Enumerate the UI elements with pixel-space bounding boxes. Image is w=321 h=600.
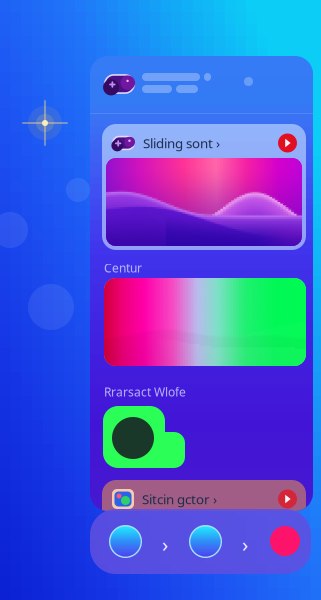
button[interactable]: Sitcin gctor ›: [106, 484, 302, 514]
staticText: ›: [242, 531, 248, 558]
button[interactable]: Step one: [109, 525, 142, 558]
button[interactable]: Sliding sont ›: [106, 128, 302, 158]
staticText: Sliding sont ›: [143, 134, 220, 152]
staticText: Rrarsact Wlofe: [104, 384, 186, 400]
staticText: ›: [162, 531, 168, 558]
button[interactable]: Record: [270, 526, 300, 556]
staticText: Sitcin gctor ›: [142, 490, 217, 508]
staticText: Centur: [104, 260, 142, 276]
button[interactable]: Step two: [189, 525, 222, 558]
